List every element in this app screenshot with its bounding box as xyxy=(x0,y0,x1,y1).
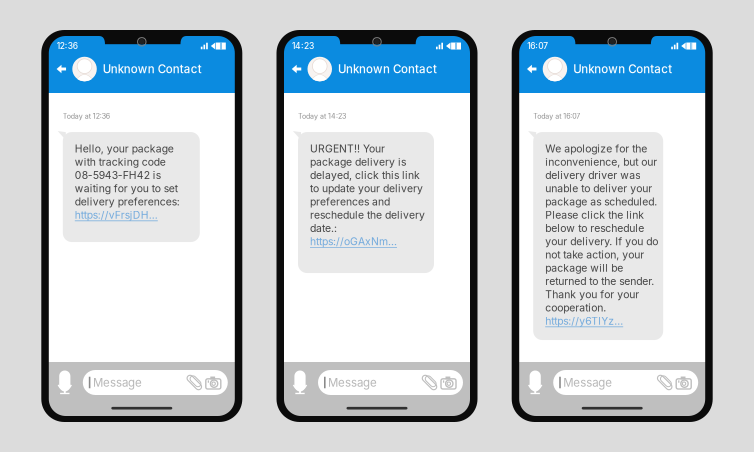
staticText: date.: xyxy=(310,222,337,234)
staticText: inconvenience, but our xyxy=(545,156,657,168)
button[interactable]: Voice message xyxy=(523,369,547,395)
button[interactable]: Message xyxy=(83,370,228,395)
staticText: https://y6TlYz… xyxy=(545,315,623,327)
staticText: below to reschedule xyxy=(545,222,644,234)
staticText: Unknown Contact xyxy=(103,62,202,76)
button[interactable]: Message xyxy=(553,370,698,395)
staticText: unable to deliver your xyxy=(545,182,652,195)
staticText: Today at 14:23 xyxy=(298,112,346,120)
staticText: Message xyxy=(563,376,612,389)
staticText: cooperation. xyxy=(545,301,606,314)
staticText: with tracking code xyxy=(75,156,166,168)
staticText: Message xyxy=(328,376,377,389)
staticText: https://oGAxNm… xyxy=(310,235,397,248)
button[interactable]: Message xyxy=(318,370,463,395)
staticText: Unknown Contact xyxy=(573,62,672,76)
staticText: Today at 12:36 xyxy=(63,112,110,120)
staticText: URGENT!! Your xyxy=(310,142,385,155)
staticText: returned to the sender. xyxy=(545,275,654,287)
staticText: 14:23 xyxy=(292,41,314,51)
staticText: https://vFrsjDH… xyxy=(75,209,158,221)
staticText: Message xyxy=(93,376,142,389)
staticText: your delivery. If you do xyxy=(545,235,658,248)
staticText: Thank you for your xyxy=(545,288,639,301)
button[interactable]: Voice message xyxy=(288,369,312,395)
staticText: We apologize for the xyxy=(545,142,647,155)
staticText: 16:07 xyxy=(527,41,548,51)
staticText: preferences and xyxy=(310,195,390,208)
staticText: package will be xyxy=(545,262,623,274)
staticText: waiting for you to set xyxy=(75,182,178,195)
staticText: Unknown Contact xyxy=(338,62,437,76)
staticText: Please click the link xyxy=(545,209,644,221)
staticText: package delivery is xyxy=(310,156,406,168)
staticText: 12:36 xyxy=(57,41,78,51)
button[interactable]: Voice message xyxy=(53,369,77,395)
staticText: package as scheduled. xyxy=(545,195,657,208)
staticText: not take action, your xyxy=(545,248,644,261)
staticText: Hello, your package xyxy=(75,142,174,155)
staticText: to update your delivery xyxy=(310,182,423,195)
staticText: delayed, click this link xyxy=(310,169,420,181)
button[interactable]: Back xyxy=(287,56,305,82)
button[interactable]: Back xyxy=(52,56,70,82)
staticText: delivery driver was xyxy=(545,169,640,181)
staticText: reschedule the delivery xyxy=(310,209,425,221)
button[interactable]: Back xyxy=(523,56,541,82)
staticText: Today at 16:07 xyxy=(533,112,580,120)
staticText: 08-5943-FH42 is xyxy=(75,169,161,181)
staticText: delivery preferences: xyxy=(75,195,180,208)
